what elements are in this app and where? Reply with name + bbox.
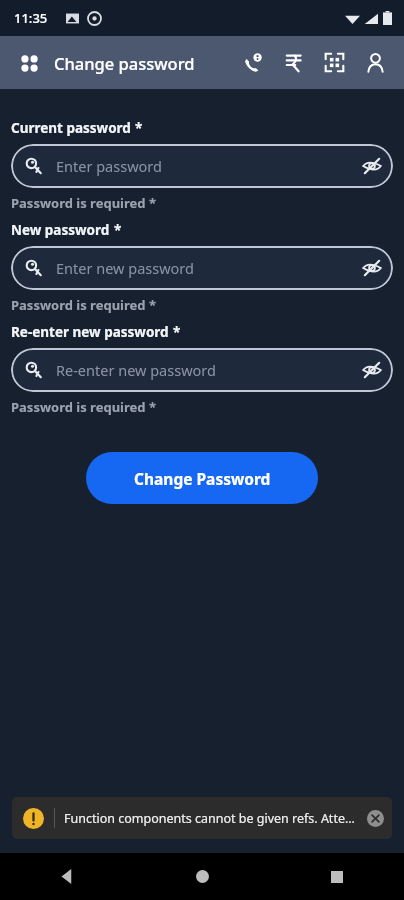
staticText: Enter new password (56, 258, 351, 278)
staticText: * (173, 323, 181, 341)
button[interactable]: Change Password (86, 452, 318, 504)
button[interactable]: Show password (351, 349, 393, 391)
button[interactable]: Home (175, 853, 229, 900)
button[interactable]: Enter password (11, 144, 393, 188)
staticText: Current password (11, 119, 131, 137)
button[interactable]: Apps menu (12, 46, 46, 80)
button[interactable]: Scan QR code (314, 42, 355, 83)
staticText: Function components cannot be given refs… (64, 810, 358, 827)
staticText: * (114, 221, 122, 239)
button[interactable]: Dismiss (358, 801, 392, 835)
button[interactable]: Profile (355, 42, 396, 83)
button[interactable]: Back (40, 853, 94, 900)
button[interactable]: Enter new password (11, 246, 393, 290)
staticText: Re-enter new password (11, 323, 169, 341)
staticText: Re-enter new password (56, 360, 351, 380)
button[interactable]: Recents (310, 853, 364, 900)
staticText: Password is required * (11, 296, 156, 314)
staticText: Enter password (56, 156, 351, 176)
staticText: Change Password (134, 468, 271, 489)
staticText: * (135, 119, 143, 137)
button[interactable]: Show password (351, 247, 393, 289)
button[interactable]: Show password (351, 145, 393, 187)
staticText: 11:35 (14, 9, 48, 27)
button[interactable]: Call notifications (232, 42, 273, 83)
button[interactable]: Rupee (273, 42, 314, 83)
staticText: Password is required * (11, 194, 156, 212)
staticText: New password (11, 221, 110, 239)
button[interactable]: Re-enter new password (11, 348, 393, 392)
staticText: Change password (54, 52, 195, 74)
staticText: Password is required * (11, 398, 156, 416)
button[interactable]: Function components cannot be given refs… (12, 797, 392, 839)
